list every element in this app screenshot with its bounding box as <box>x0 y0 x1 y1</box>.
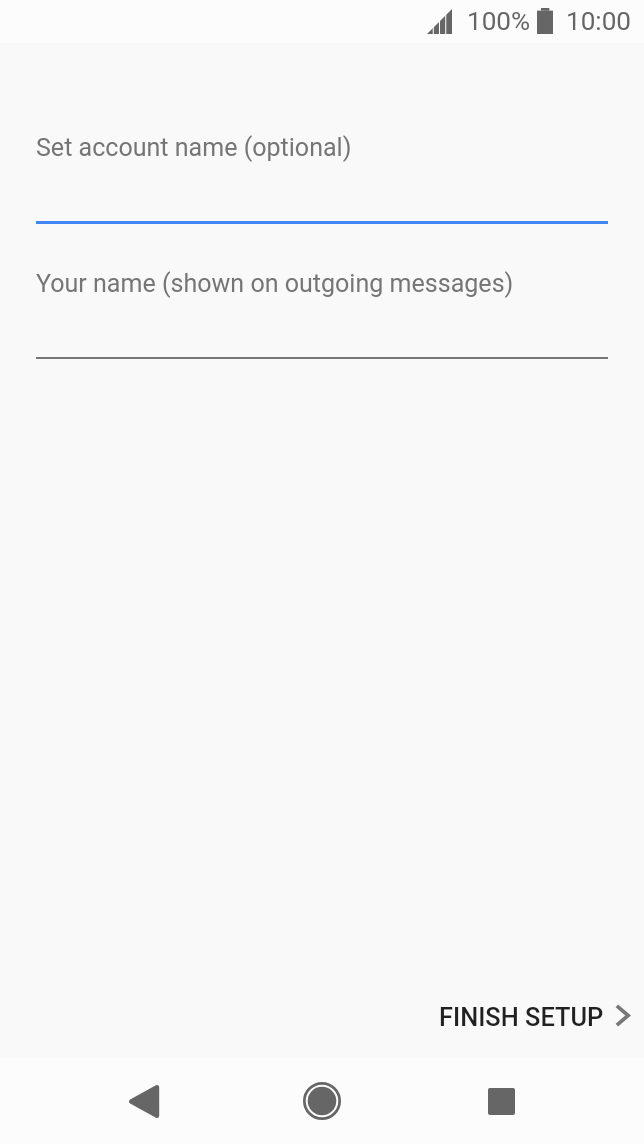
button[interactable]: Back <box>113 1071 173 1131</box>
other: Battery full <box>537 8 553 34</box>
staticText: 100% <box>467 6 531 37</box>
button[interactable]: Recent apps <box>471 1071 531 1131</box>
staticText: Your name (shown on outgoing messages) <box>36 269 514 298</box>
button[interactable]: Home <box>292 1071 352 1131</box>
other: Cellular signal full <box>427 9 452 34</box>
staticText: Set account name (optional) <box>36 133 352 162</box>
staticText: FINISH SETUP <box>439 1002 604 1032</box>
button[interactable]: Set account name (optional) <box>0 133 644 224</box>
staticText: 10:00 <box>566 6 631 37</box>
button[interactable]: Your name (shown on outgoing messages) <box>0 269 644 359</box>
button[interactable]: FINISH SETUP <box>429 988 640 1046</box>
